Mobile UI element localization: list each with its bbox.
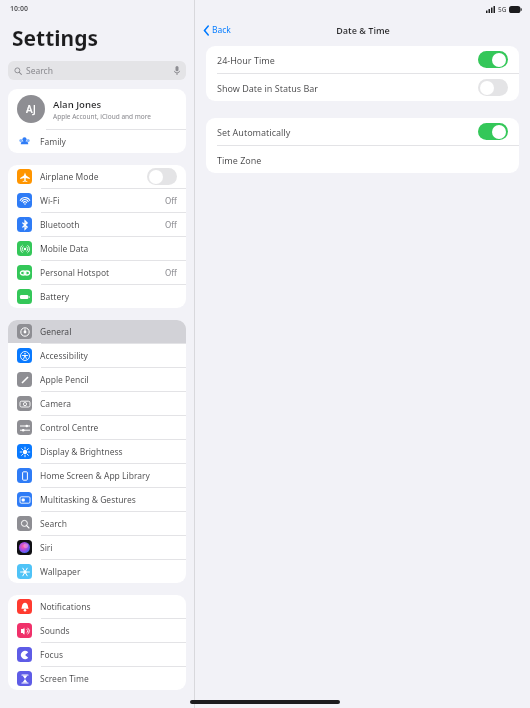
staticText: Apple Pencil: [40, 374, 89, 386]
staticText: Siri: [40, 542, 53, 554]
button[interactable]: 24-Hour Time: [206, 46, 519, 73]
button[interactable]: Wallpaper: [8, 560, 186, 583]
staticText: AJ: [26, 102, 36, 116]
button[interactable]: Focus: [8, 643, 186, 666]
button[interactable]: Search: [8, 61, 186, 80]
staticText: Off: [165, 267, 177, 278]
staticText: Multitasking & Gestures: [40, 494, 136, 506]
button[interactable]: Siri: [8, 536, 186, 559]
button[interactable]: Screen Time: [8, 667, 186, 690]
staticText: Battery: [40, 291, 70, 303]
button[interactable]: Battery: [8, 285, 186, 308]
button[interactable]: Wi-Fi: [8, 189, 186, 212]
staticText: Focus: [40, 649, 63, 661]
button[interactable]: Control Centre: [8, 416, 186, 439]
staticText: Mobile Data: [40, 243, 89, 255]
staticText: Wi-Fi: [40, 195, 60, 207]
button[interactable]: Apple Pencil: [8, 368, 186, 391]
button[interactable]: Multitasking & Gestures: [8, 488, 186, 511]
button[interactable]: Back: [201, 22, 234, 38]
staticText: 5G: [498, 5, 507, 14]
button[interactable]: Mobile Data: [8, 237, 186, 260]
staticText: Home Screen & App Library: [40, 470, 150, 482]
staticText: Screen Time: [40, 673, 89, 685]
button[interactable]: Search: [8, 512, 186, 535]
staticText: Back: [212, 24, 231, 36]
staticText: Notifications: [40, 601, 91, 613]
staticText: Wallpaper: [40, 566, 81, 578]
staticText: Search: [26, 65, 53, 77]
staticText: Control Centre: [40, 422, 99, 434]
button[interactable]: Sounds: [8, 619, 186, 642]
button[interactable]: Home Screen & App Library: [8, 464, 186, 487]
staticText: Personal Hotspot: [40, 267, 110, 279]
staticText: Off: [165, 219, 177, 230]
staticText: Bluetooth: [40, 219, 80, 231]
staticText: Camera: [40, 398, 71, 410]
button[interactable]: Camera: [8, 392, 186, 415]
button[interactable]: Personal Hotspot: [8, 261, 186, 284]
staticText: Search: [40, 518, 67, 530]
button[interactable]: Display & Brightness: [8, 440, 186, 463]
button[interactable]: Set Automatically: [206, 118, 519, 145]
staticText: Airplane Mode: [40, 171, 99, 183]
button[interactable]: Time Zone: [206, 146, 519, 173]
button[interactable]: Show Date in Status Bar: [206, 74, 519, 101]
button[interactable]: Off: [147, 168, 177, 185]
staticText: Settings: [12, 24, 99, 53]
staticText: Alan Jones: [53, 98, 102, 111]
staticText: Sounds: [40, 625, 70, 637]
staticText: 10:00: [10, 4, 28, 14]
staticText: 24-Hour Time: [217, 54, 275, 66]
staticText: Time Zone: [217, 154, 262, 166]
button[interactable]: Family: [8, 130, 186, 153]
staticText: Accessibility: [40, 350, 88, 362]
button[interactable]: Accessibility: [8, 344, 186, 367]
button[interactable]: Off: [478, 79, 508, 96]
staticText: Show Date in Status Bar: [217, 82, 319, 94]
staticText: Family: [40, 136, 66, 148]
staticText: Apple Account, iCloud and more: [53, 112, 152, 121]
button[interactable]: AJ: [8, 89, 186, 129]
staticText: Set Automatically: [217, 126, 291, 138]
button[interactable]: Airplane Mode: [8, 165, 186, 188]
staticText: General: [40, 326, 72, 338]
staticText: Off: [165, 195, 177, 206]
button[interactable]: Notifications: [8, 595, 186, 618]
button[interactable]: General: [8, 320, 186, 343]
staticText: Date & Time: [336, 24, 390, 36]
button[interactable]: On: [478, 51, 508, 68]
staticText: Display & Brightness: [40, 446, 123, 458]
button[interactable]: Bluetooth: [8, 213, 186, 236]
button[interactable]: On: [478, 123, 508, 140]
